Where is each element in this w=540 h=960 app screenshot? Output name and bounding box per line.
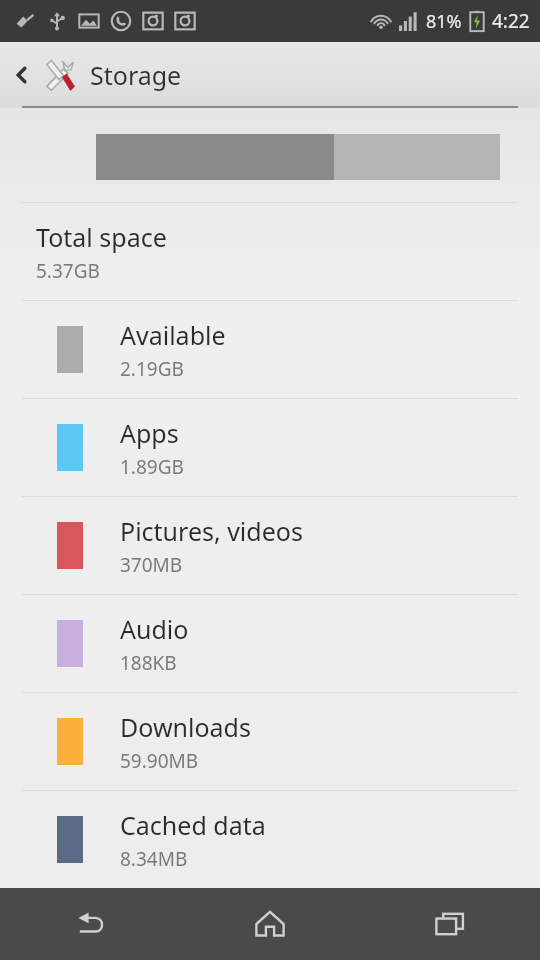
button[interactable]: Back bbox=[0, 888, 180, 960]
button[interactable]: Available bbox=[0, 301, 540, 398]
button[interactable]: Downloads bbox=[0, 693, 540, 790]
staticText: 5.37GB bbox=[36, 258, 100, 284]
staticText: Available bbox=[120, 318, 226, 352]
button[interactable]: Pictures, videos bbox=[0, 497, 540, 594]
button[interactable]: Apps bbox=[0, 399, 540, 496]
staticText: Apps bbox=[120, 416, 179, 450]
button[interactable]: Back bbox=[0, 42, 540, 108]
staticText: Pictures, videos bbox=[120, 514, 303, 548]
button[interactable]: Home bbox=[180, 888, 360, 960]
other: Back bbox=[10, 63, 34, 87]
staticText: 81% bbox=[426, 9, 462, 34]
staticText: Total space bbox=[36, 220, 167, 254]
button[interactable]: Recents bbox=[360, 888, 540, 960]
staticText: 1.89GB bbox=[120, 454, 184, 480]
staticText: 370MB bbox=[120, 552, 183, 578]
staticText: Downloads bbox=[120, 710, 251, 744]
staticText: 188KB bbox=[120, 650, 177, 676]
button[interactable]: Cached data bbox=[0, 791, 540, 888]
button[interactable]: Total space bbox=[0, 203, 540, 300]
staticText: Storage bbox=[90, 58, 182, 92]
button[interactable]: Audio bbox=[0, 595, 540, 692]
staticText: 8.34MB bbox=[120, 846, 188, 872]
staticText: 4:22 bbox=[492, 8, 530, 34]
staticText: Cached data bbox=[120, 808, 266, 842]
staticText: 2.19GB bbox=[120, 356, 184, 382]
staticText: 59.90MB bbox=[120, 748, 199, 774]
staticText: Audio bbox=[120, 612, 189, 646]
